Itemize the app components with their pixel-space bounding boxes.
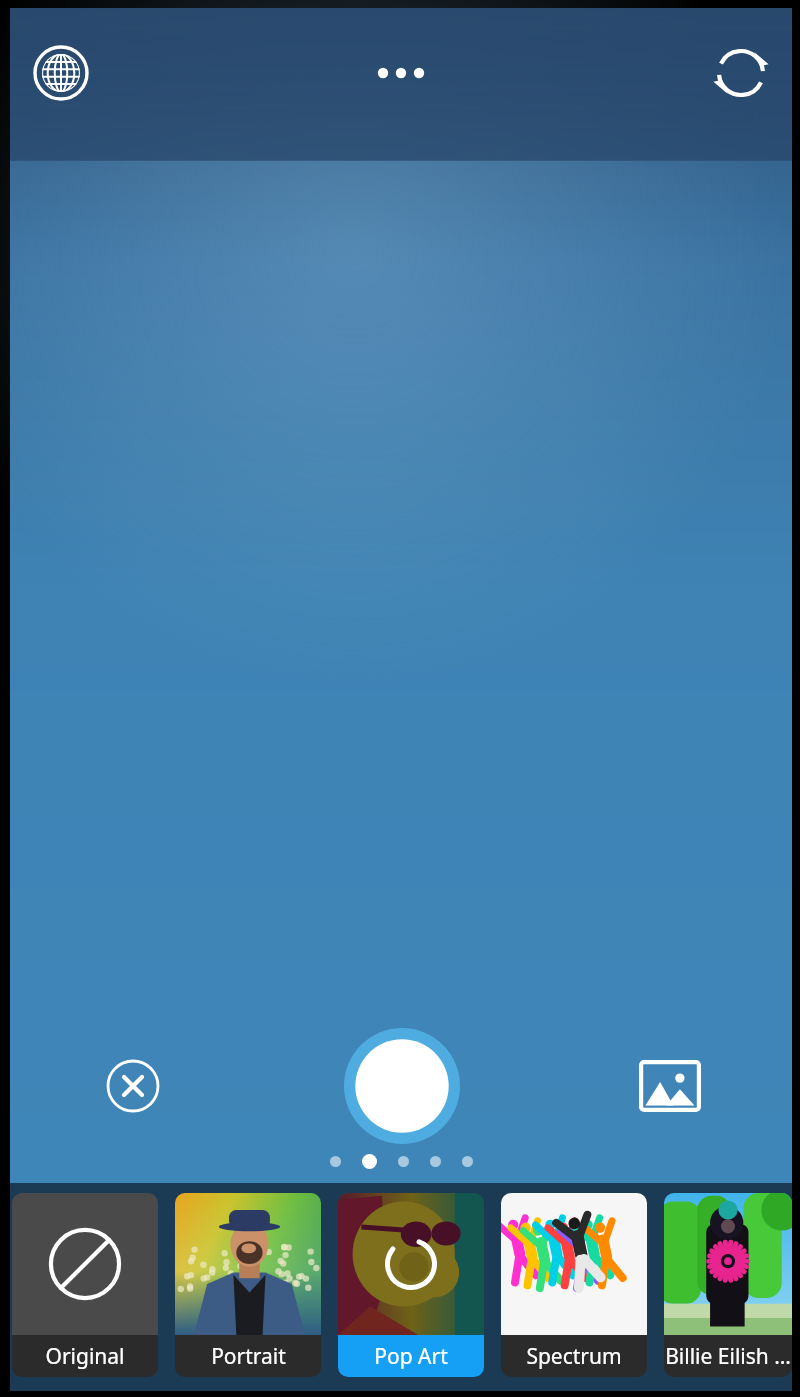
- staticText: Pop Art: [374, 1342, 448, 1371]
- button[interactable]: Capture: [255, 1022, 548, 1150]
- button[interactable]: Billie Eilish Bl...: [664, 1193, 792, 1377]
- button[interactable]: More options: [361, 45, 441, 101]
- staticText: Billie Eilish Bl...: [664, 1342, 792, 1371]
- button[interactable]: Original: [12, 1193, 158, 1377]
- button[interactable]: Switch camera: [706, 38, 776, 108]
- button[interactable]: Close: [10, 1022, 255, 1150]
- button[interactable]: Portrait: [175, 1193, 321, 1377]
- staticText: Spectrum: [526, 1342, 622, 1371]
- staticText: Portrait: [211, 1342, 286, 1371]
- button[interactable]: Effects: [26, 38, 96, 108]
- button[interactable]: Pop Art: [338, 1193, 484, 1377]
- staticText: Original: [45, 1342, 125, 1371]
- button[interactable]: Spectrum: [501, 1193, 647, 1377]
- button[interactable]: Open gallery: [548, 1022, 792, 1150]
